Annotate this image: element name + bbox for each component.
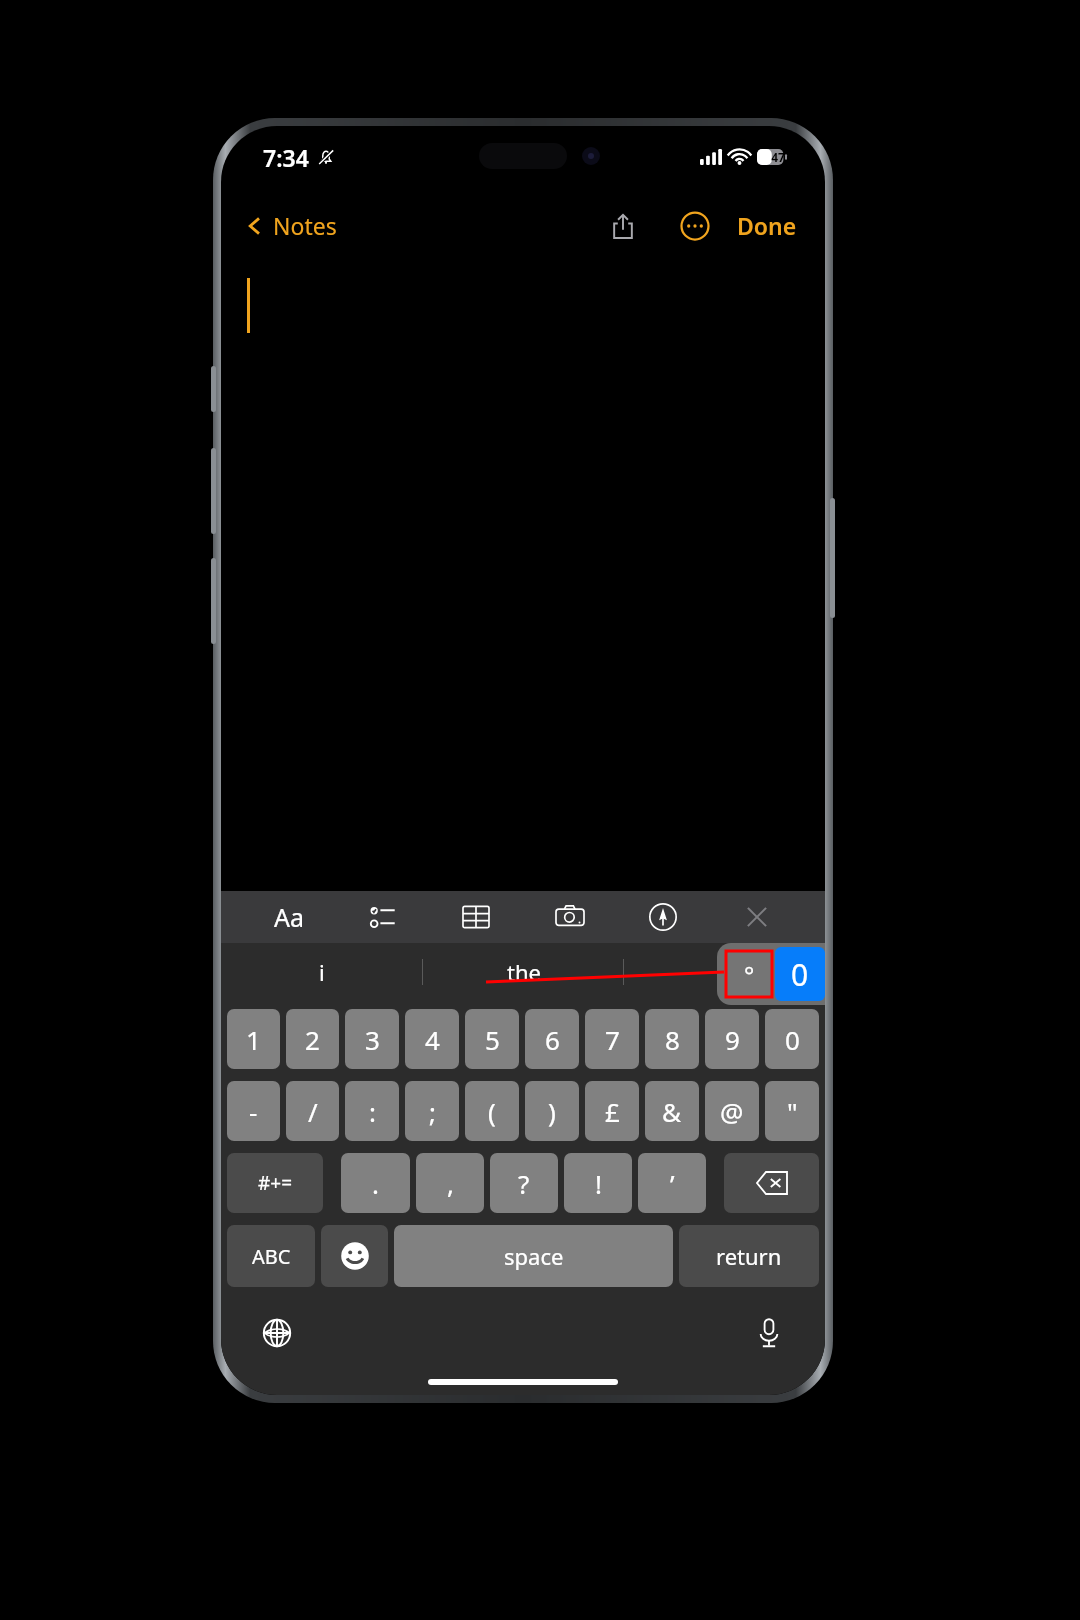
staticText: return (716, 1241, 782, 1271)
staticText: Notes (273, 210, 337, 241)
button[interactable]: £ (585, 1081, 639, 1141)
staticText: ( (488, 1094, 496, 1129)
button[interactable]: More (673, 204, 717, 248)
staticText: " (787, 1094, 798, 1129)
button[interactable]: space (394, 1225, 673, 1287)
staticText: 6 (545, 1022, 560, 1057)
staticText: @ (720, 1094, 744, 1129)
staticText: 7 (605, 1022, 620, 1057)
button[interactable]: Share (601, 204, 645, 248)
button[interactable]: Format (269, 897, 309, 937)
button[interactable]: / (286, 1081, 339, 1141)
staticText: 2 (305, 1022, 320, 1057)
staticText: 0 (785, 1022, 800, 1057)
staticText: 8 (665, 1022, 680, 1057)
staticText: i (319, 957, 325, 987)
staticText: Aa (274, 900, 305, 934)
button[interactable]: 5 (465, 1009, 519, 1069)
staticText: 4 (425, 1022, 440, 1057)
staticText: ’ (670, 1166, 675, 1201)
button[interactable]: ) (525, 1081, 579, 1141)
staticText: ° (744, 958, 755, 991)
staticText: ? (518, 1166, 530, 1201)
button[interactable]: 2 (286, 1009, 339, 1069)
button[interactable]: 4 (405, 1009, 459, 1069)
staticText: & (662, 1094, 682, 1129)
staticText: , (447, 1166, 454, 1201)
button[interactable] (624, 943, 825, 1001)
button[interactable]: Camera (550, 897, 590, 937)
button[interactable]: @ (705, 1081, 759, 1141)
staticText: ) (548, 1094, 556, 1129)
staticText: £ (605, 1094, 620, 1129)
button[interactable]: ’ (638, 1153, 706, 1213)
button[interactable]: ! (564, 1153, 632, 1213)
button[interactable]: ABC (227, 1225, 315, 1287)
button[interactable]: Switch keyboard (255, 1311, 299, 1355)
button[interactable]: Backspace (724, 1153, 819, 1213)
button[interactable]: : (345, 1081, 399, 1141)
staticText: - (249, 1094, 258, 1129)
button[interactable]: " (765, 1081, 819, 1141)
button[interactable]: 8 (645, 1009, 699, 1069)
button[interactable]: 0 (775, 947, 825, 1001)
button[interactable]: Dictate (747, 1311, 791, 1355)
button[interactable]: 6 (525, 1009, 579, 1069)
button[interactable]: Close (737, 897, 777, 937)
button[interactable]: Checklist (363, 897, 403, 937)
staticText: 47 (771, 149, 785, 165)
button[interactable]: Markup (643, 897, 683, 937)
button[interactable]: 9 (705, 1009, 759, 1069)
button[interactable]: Table (456, 897, 496, 937)
button[interactable]: 0 (765, 1009, 819, 1069)
button[interactable]: i (221, 943, 423, 1001)
button[interactable]: Done (731, 202, 803, 249)
button[interactable]: 7 (585, 1009, 639, 1069)
staticText: the (507, 957, 541, 987)
button[interactable]: return (679, 1225, 819, 1287)
staticText: 5 (485, 1022, 500, 1057)
staticText: 9 (725, 1022, 740, 1057)
button[interactable]: Emoji (321, 1225, 388, 1287)
button[interactable]: 1 (227, 1009, 280, 1069)
button[interactable]: & (645, 1081, 699, 1141)
button[interactable]: ? (490, 1153, 558, 1213)
button[interactable]: , (416, 1153, 484, 1213)
button[interactable]: - (227, 1081, 280, 1141)
button[interactable]: . (341, 1153, 410, 1213)
staticText: 1 (246, 1022, 261, 1057)
staticText: 3 (365, 1022, 380, 1057)
staticText: ABC (252, 1243, 291, 1270)
button[interactable]: #+= (227, 1153, 323, 1213)
button[interactable]: ; (405, 1081, 459, 1141)
staticText: Done (737, 210, 797, 241)
staticText: ; (429, 1094, 436, 1129)
staticText: ! (595, 1166, 602, 1201)
button[interactable]: Notes (245, 210, 337, 241)
button[interactable]: ° (726, 951, 772, 997)
button[interactable]: ( (465, 1081, 519, 1141)
button[interactable]: 3 (345, 1009, 399, 1069)
staticText: #+= (258, 1170, 293, 1196)
staticText: 0 (791, 954, 809, 995)
button[interactable]: the (423, 943, 624, 1001)
staticText: / (308, 1094, 318, 1129)
staticText: 7:34 (263, 142, 309, 173)
staticText: : (369, 1094, 376, 1129)
staticText: space (504, 1241, 564, 1271)
staticText: . (372, 1166, 379, 1201)
